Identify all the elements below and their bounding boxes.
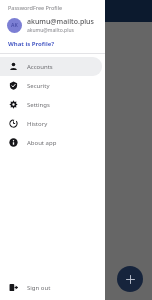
staticText: Accounts	[27, 63, 53, 71]
staticText: akumu@mailto.plus	[27, 17, 94, 27]
staticText: PasswordFree Profile	[8, 4, 63, 11]
staticText: Settings	[27, 101, 50, 109]
staticText: About app	[27, 139, 57, 147]
staticText: History	[27, 120, 48, 128]
button[interactable]: AK	[0, 16, 105, 35]
button[interactable]: Security	[0, 76, 102, 95]
staticText: Security	[27, 82, 50, 90]
button[interactable]: About app	[0, 133, 102, 152]
staticText: What is Profile?	[8, 40, 55, 48]
button[interactable]: History	[0, 114, 102, 133]
button[interactable]: What is Profile?	[0, 39, 59, 49]
button[interactable]: Sign out	[0, 279, 105, 300]
staticText: akumu@mailto.plus	[27, 27, 74, 34]
button[interactable]: Add account	[117, 266, 143, 292]
staticText: AK	[11, 22, 18, 29]
staticText: Sign out	[27, 284, 51, 292]
button[interactable]: Accounts	[0, 57, 102, 76]
button[interactable]: Settings	[0, 95, 102, 114]
